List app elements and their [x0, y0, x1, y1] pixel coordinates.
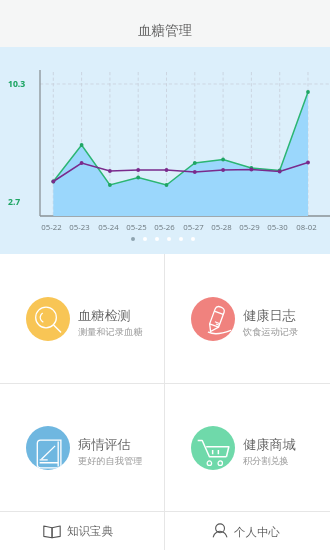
staticText: 10.3: [8, 78, 26, 90]
button[interactable]: 血糖检测: [0, 254, 164, 383]
staticText: 05-29: [239, 222, 260, 233]
staticText: 更好的自我管理: [78, 455, 143, 467]
staticText: 05-22: [41, 222, 62, 233]
staticText: 05-25: [126, 222, 147, 233]
staticText: 05-23: [69, 222, 90, 233]
staticText: 饮食运动记录: [243, 326, 299, 338]
staticText: 血糖管理: [138, 22, 192, 39]
staticText: 测量和记录血糖: [78, 326, 143, 338]
staticText: 个人中心: [234, 525, 280, 539]
button[interactable]: 健康日志: [165, 254, 330, 383]
staticText: 知识宝典: [67, 524, 113, 538]
staticText: 05-28: [211, 222, 232, 233]
staticText: 病情评估: [78, 436, 131, 453]
button[interactable]: 病情评估: [0, 384, 164, 511]
staticText: 血糖检测: [78, 307, 131, 324]
staticText: 05-24: [98, 222, 119, 233]
staticText: 05-30: [267, 222, 288, 233]
staticText: 健康日志: [243, 307, 296, 324]
staticText: 积分割兑换: [243, 455, 289, 467]
staticText: 健康商城: [243, 436, 296, 453]
staticText: 08-02: [296, 222, 317, 233]
button[interactable]: 知识宝典: [0, 512, 164, 550]
staticText: 2.7: [8, 196, 21, 208]
staticText: 05-27: [183, 222, 204, 233]
button[interactable]: 健康商城: [165, 384, 330, 511]
button[interactable]: 个人中心: [165, 512, 330, 550]
staticText: 05-26: [154, 222, 175, 233]
